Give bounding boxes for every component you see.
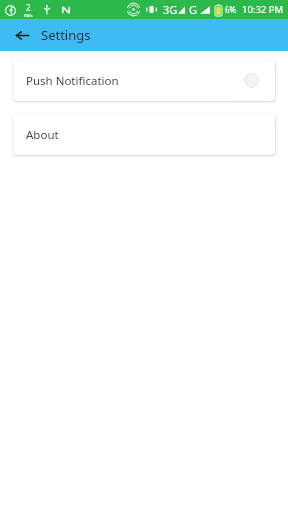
button[interactable]: About xyxy=(13,114,275,155)
staticText: Push Notification xyxy=(26,73,119,89)
staticText: 2 xyxy=(26,2,31,13)
staticText: G xyxy=(189,2,198,17)
staticText: KB/s xyxy=(24,13,33,18)
staticText: Settings xyxy=(41,26,91,44)
staticText: 10:32 PM xyxy=(242,3,284,16)
button[interactable]: Toggle push notification xyxy=(244,73,259,88)
button[interactable]: Push Notification xyxy=(13,60,275,101)
staticText: 3G xyxy=(163,2,178,17)
staticText: About xyxy=(26,127,59,143)
staticText: 6% xyxy=(225,4,237,15)
button[interactable]: Back xyxy=(11,24,33,46)
